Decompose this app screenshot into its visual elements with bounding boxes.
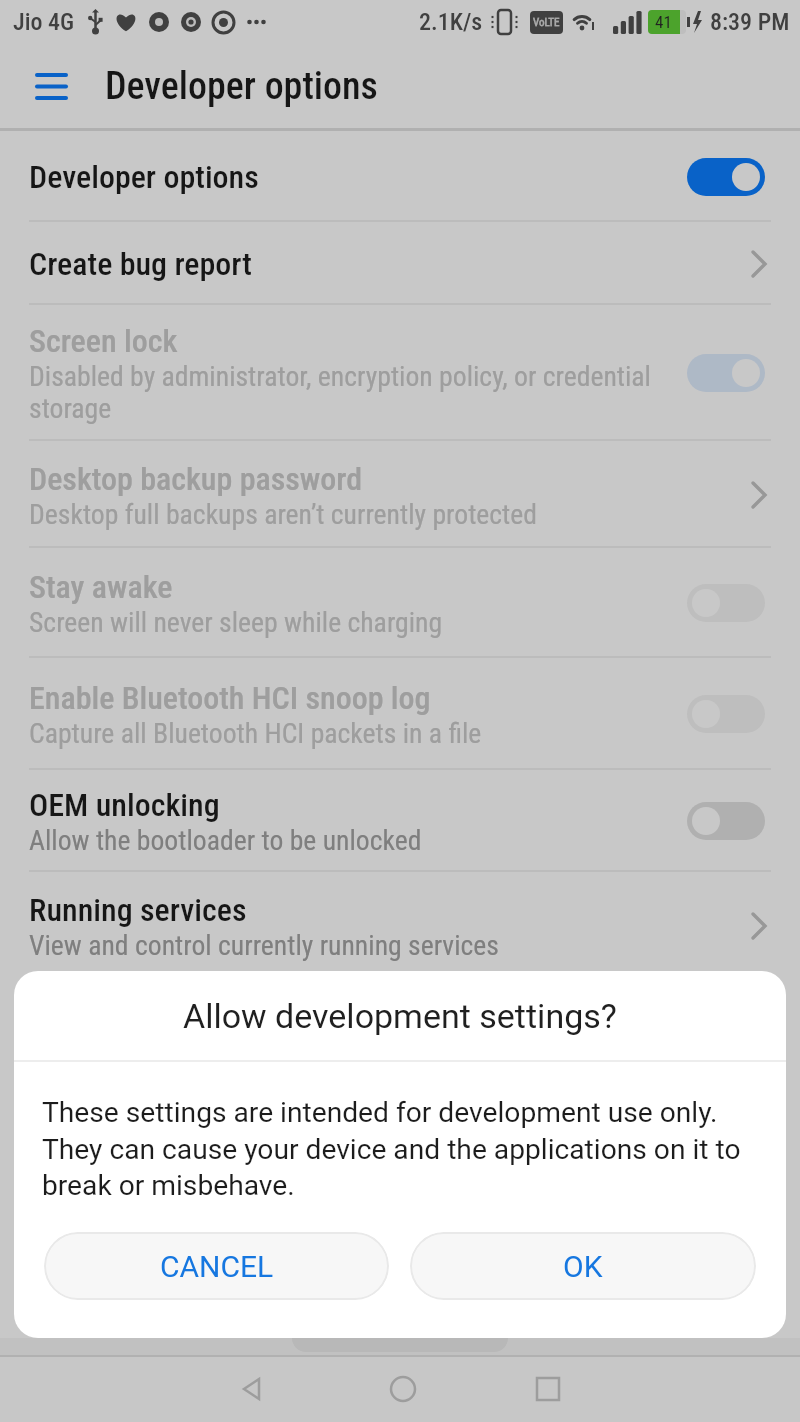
staticText: Create bug report	[29, 245, 252, 283]
staticText: 2.1K/s	[419, 8, 483, 36]
staticText: Disabled by administrator, encryption po…	[29, 360, 651, 392]
staticText: These settings are intended for developm…	[42, 1096, 741, 1202]
staticText: VoLTE	[533, 16, 560, 29]
staticText: Capture all Bluetooth HCI packets in a f…	[29, 717, 482, 749]
button[interactable]	[389, 1375, 417, 1403]
button[interactable]: OEM unlocking	[0, 770, 800, 872]
staticText: Running services	[29, 891, 247, 929]
button[interactable]: OK	[410, 1232, 756, 1300]
staticText: Jio 4G	[13, 8, 75, 36]
button[interactable]: Create bug report	[0, 222, 800, 305]
button[interactable]	[535, 1376, 561, 1402]
staticText: Screen lock	[29, 322, 178, 360]
button[interactable]: Running services	[0, 872, 800, 979]
button[interactable]: Enable Bluetooth HCI snoop log	[0, 658, 800, 770]
staticText: OK	[563, 1249, 603, 1284]
staticText: Stay awake	[29, 568, 173, 606]
staticText: Developer options	[29, 158, 259, 196]
staticText: storage	[29, 392, 112, 424]
button[interactable]	[35, 73, 68, 100]
staticText: 8:39 PM	[710, 8, 790, 36]
staticText: 41	[655, 12, 672, 32]
staticText: Developer options	[105, 64, 378, 109]
staticText: View and control currently running servi…	[29, 929, 499, 961]
button[interactable]: Developer options	[0, 131, 800, 222]
staticText: CANCEL	[160, 1249, 274, 1284]
staticText: Allow the bootloader to be unlocked	[29, 824, 422, 856]
button[interactable]: Stay awake	[0, 548, 800, 658]
button[interactable]: Desktop backup password	[0, 441, 800, 548]
staticText: Desktop backup password	[29, 460, 363, 498]
staticText: Screen will never sleep while charging	[29, 606, 443, 638]
staticText: Desktop full backups aren’t currently pr…	[29, 498, 538, 530]
button[interactable]: Screen lock	[0, 305, 800, 441]
button[interactable]: CANCEL	[44, 1232, 389, 1300]
button[interactable]	[240, 1377, 264, 1401]
staticText: OEM unlocking	[29, 786, 220, 824]
staticText: Allow development settings?	[183, 996, 617, 1036]
staticText: Enable Bluetooth HCI snoop log	[29, 679, 431, 717]
